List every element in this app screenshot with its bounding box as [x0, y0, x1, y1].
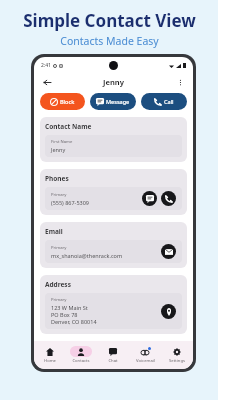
staticText: Primary	[51, 297, 67, 303]
button[interactable]: Settings	[161, 341, 193, 369]
button[interactable]: Email	[40, 222, 187, 268]
button[interactable]: Home	[34, 341, 65, 369]
staticText: 123 W Main St	[51, 304, 88, 311]
staticText: Email	[45, 227, 63, 236]
button[interactable]: Directions	[161, 304, 176, 319]
button[interactable]: Contacts	[65, 341, 97, 369]
button[interactable]: Voicemail	[129, 341, 161, 369]
button[interactable]: Message	[142, 191, 157, 206]
button[interactable]: Email	[161, 244, 176, 259]
button[interactable]: Message	[90, 93, 136, 110]
staticText: Chat	[108, 358, 118, 364]
staticText: Settings	[169, 358, 185, 364]
staticText: Contacts	[72, 358, 90, 364]
staticText: Jenny	[51, 146, 66, 153]
staticText: (555) 867-5309	[51, 199, 89, 206]
staticText: Home	[44, 358, 56, 364]
staticText: Contact Name	[45, 122, 92, 131]
staticText: Address	[45, 280, 71, 289]
staticText: Simple Contact View	[23, 9, 196, 32]
staticText: Phones	[45, 174, 69, 183]
button[interactable]: Call	[161, 191, 176, 206]
staticText: First Name	[51, 139, 73, 145]
staticText: Voicemail	[136, 358, 155, 364]
staticText: Jenny	[103, 77, 124, 87]
staticText: Primary	[51, 245, 67, 251]
button[interactable]: Address	[40, 275, 187, 334]
button[interactable]: More options	[174, 76, 186, 88]
button[interactable]: Block	[40, 93, 85, 110]
button[interactable]: Contact Name	[40, 117, 187, 162]
staticText: Message	[106, 98, 130, 105]
staticText: Contacts Made Easy	[60, 34, 159, 48]
staticText: mx_shanoia@thenrack.com	[51, 252, 123, 259]
staticText: Block	[60, 98, 75, 105]
staticText: Denver, CO 80014	[51, 318, 97, 325]
staticText: Call	[164, 98, 174, 105]
button[interactable]: Phones	[40, 169, 187, 215]
button[interactable]: Chat	[97, 341, 129, 369]
staticText: Primary	[51, 192, 67, 198]
button[interactable]: Back	[41, 76, 53, 88]
button[interactable]: Call	[141, 93, 187, 110]
staticText: 2:41	[41, 62, 51, 69]
staticText: PO Box 78	[51, 311, 78, 318]
